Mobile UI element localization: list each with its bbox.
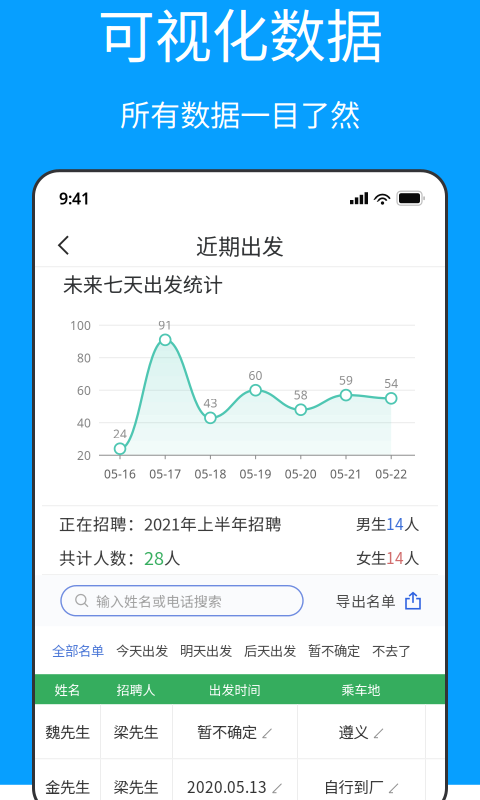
staticText: 不去了 (372, 641, 411, 660)
staticText: 80 (77, 350, 91, 366)
staticText: 人 (404, 546, 419, 568)
button[interactable]: 今天出发 (110, 626, 174, 674)
staticText: 14 (386, 546, 404, 568)
staticText: 05-17 (149, 466, 181, 482)
staticText: 暂不确定 (308, 641, 360, 660)
staticText: 金先生 (45, 775, 90, 797)
staticText: 05-18 (194, 466, 226, 482)
staticText: 后天出发 (244, 641, 296, 660)
staticText: 暂不确定 (197, 720, 257, 742)
staticText: 未来七天出发统计 (63, 269, 223, 298)
staticText: 05-20 (285, 466, 317, 482)
button[interactable]: 输入姓名或电话搜索 (61, 586, 303, 616)
staticText: 魏先生 (45, 720, 90, 742)
staticText: 05-21 (330, 466, 362, 482)
staticText: 54 (384, 375, 398, 391)
staticText: 今天出发 (116, 641, 168, 660)
staticText: 9:41 (59, 188, 90, 209)
button[interactable]: 不去了 (366, 626, 417, 674)
staticText: 明天出发 (180, 641, 232, 660)
staticText: 自行到厂 (323, 775, 383, 797)
staticText: 所有数据一目了然 (120, 92, 360, 135)
staticText: 女生 (356, 546, 386, 568)
staticText: 招聘人 (116, 680, 155, 699)
staticText: 91 (158, 317, 172, 333)
staticText: 40 (77, 415, 91, 431)
staticText: 正在招聘：2021年上半年招聘 (59, 511, 282, 535)
staticText: 05-19 (240, 466, 272, 482)
staticText: 男生 (356, 512, 386, 534)
staticText: 59 (339, 372, 353, 388)
button[interactable]: 后天出发 (238, 626, 302, 674)
staticText: 28 (144, 544, 164, 570)
staticText: 梁先生 (113, 720, 158, 742)
button[interactable]: 明天出发 (174, 626, 238, 674)
staticText: 梁先生 (113, 775, 158, 797)
button[interactable]: 暂不确定 (302, 626, 366, 674)
staticText: 58 (294, 387, 308, 403)
staticText: 05-16 (104, 466, 136, 482)
staticText: 20 (77, 447, 91, 463)
button[interactable]: Back (45, 224, 82, 266)
staticText: 60 (77, 382, 91, 398)
staticText: 60 (249, 367, 263, 383)
staticText: 43 (203, 395, 217, 411)
staticText: 输入姓名或电话搜索 (96, 591, 222, 611)
staticText: 100 (70, 317, 91, 333)
staticText: 姓名 (54, 680, 80, 699)
staticText: 可视化数据 (97, 0, 382, 74)
staticText: 共计人数： (59, 545, 144, 569)
staticText: 人 (164, 545, 181, 569)
staticText: 乘车地 (341, 680, 380, 699)
staticText: 2020.05.13 (187, 775, 267, 797)
staticText: 遵义 (338, 720, 368, 742)
button[interactable]: 金先生 (35, 759, 445, 800)
staticText: 24 (113, 426, 127, 442)
staticText: 出发时间 (208, 680, 260, 699)
staticText: 人 (404, 512, 419, 534)
staticText: 导出名单 (336, 590, 396, 611)
button[interactable]: 全部名单 (46, 626, 110, 674)
button[interactable]: 导出名单 (336, 590, 421, 611)
staticText: 14 (386, 512, 404, 534)
staticText: 全部名单 (52, 641, 104, 660)
button[interactable]: 魏先生 (35, 704, 445, 758)
staticText: 近期出发 (196, 229, 284, 261)
staticText: 05-22 (375, 466, 407, 482)
